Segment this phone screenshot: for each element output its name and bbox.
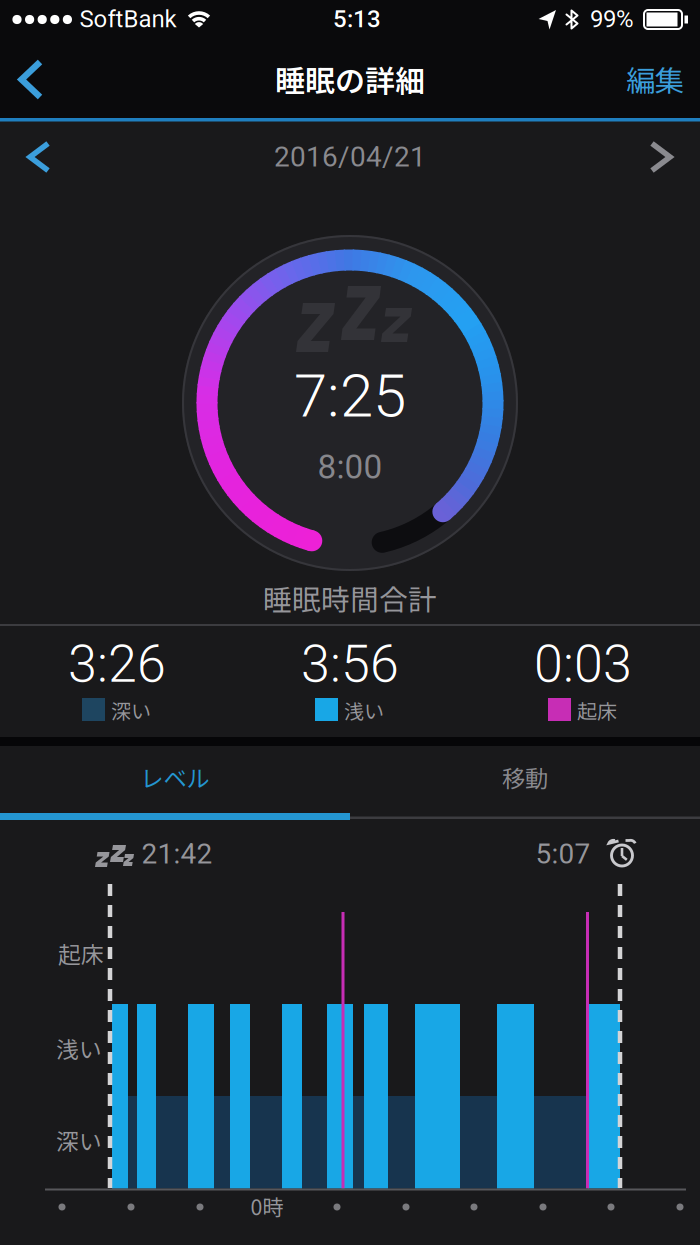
staticText: 移動 [502, 760, 548, 794]
staticText: 5:13 [333, 5, 381, 33]
staticText: 5:07 [535, 838, 590, 870]
button[interactable]: 戻る [0, 40, 64, 118]
staticText: レベル [140, 760, 209, 794]
staticText: 3:56 [301, 633, 399, 694]
staticText: 3:26 [68, 633, 166, 694]
staticText: 起床 [58, 937, 104, 969]
staticText: 21:42 [141, 838, 212, 870]
button[interactable]: 編集 [610, 40, 700, 118]
button[interactable]: 前の日 [6, 128, 66, 186]
staticText: 99% [590, 5, 634, 33]
button[interactable]: 移動 [350, 743, 700, 810]
staticText: 深い [111, 695, 151, 724]
staticText: 0:03 [534, 633, 632, 694]
staticText: 編集 [626, 58, 684, 100]
button[interactable]: レベル [0, 743, 350, 810]
staticText: 浅い [56, 1032, 102, 1064]
staticText: 睡眠の詳細 [275, 57, 425, 101]
staticText: 2016/04/21 [274, 141, 426, 173]
staticText: 8:00 [317, 447, 382, 487]
staticText: 浅い [344, 695, 384, 724]
staticText: 睡眠時間合計 [263, 577, 437, 619]
staticText: 起床 [577, 695, 617, 724]
staticText: 0時 [250, 1191, 283, 1221]
staticText: SoftBank [79, 5, 176, 33]
staticText: 7:25 [294, 361, 406, 431]
staticText: 深い [56, 1124, 102, 1156]
button[interactable]: 次の日 [634, 128, 694, 186]
